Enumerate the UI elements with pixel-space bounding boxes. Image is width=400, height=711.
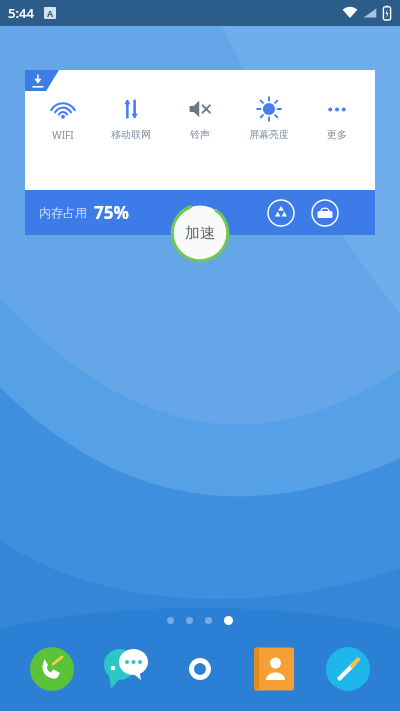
staticText: 移动联网 [111,128,151,141]
staticText: A [47,7,54,19]
button[interactable]: Clean [267,199,295,227]
button[interactable]: 加速 [170,203,230,263]
button[interactable]: Contacts [246,641,302,697]
button[interactable]: WIFI [32,94,94,142]
button[interactable]: Tools [311,199,339,227]
staticText: 屏幕亮度 [249,128,289,141]
button[interactable]: 移动联网 [100,94,162,141]
button[interactable]: Download [25,70,59,91]
staticText: WIFI [52,128,74,142]
button[interactable]: Browser [172,641,228,697]
staticText: 5:44 [8,4,34,22]
button[interactable]: Phone [24,641,80,697]
staticText: 75% [94,201,129,224]
button[interactable]: 更多 [306,94,368,141]
staticText: 内存占用 [39,205,87,220]
button[interactable]: 屏幕亮度 [238,94,300,141]
button[interactable]: Notes [320,641,376,697]
staticText: 更多 [327,128,347,141]
button[interactable]: Messages [98,641,154,697]
button[interactable]: 铃声 [169,94,231,141]
staticText: 加速 [185,224,215,243]
staticText: 铃声 [190,128,210,141]
